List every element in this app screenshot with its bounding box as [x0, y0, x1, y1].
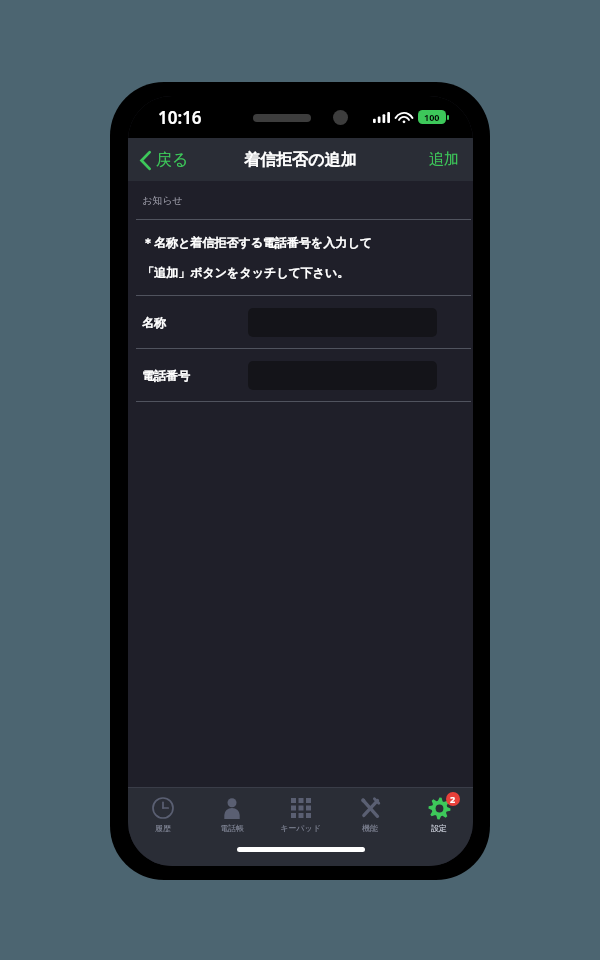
- button[interactable]: 追加: [423, 145, 465, 174]
- staticText: 電話番号: [142, 368, 248, 383]
- button[interactable]: Recents: [128, 788, 197, 840]
- button[interactable]: Keypad: [266, 788, 335, 840]
- staticText: 名称: [142, 315, 248, 330]
- button[interactable]: 名称: [128, 296, 473, 348]
- staticText: 100: [424, 111, 440, 123]
- button[interactable]: 電話番号: [128, 349, 473, 401]
- staticText: 10:16: [158, 106, 202, 129]
- staticText: 機能: [362, 823, 378, 833]
- staticText: 追加: [429, 150, 459, 169]
- staticText: ＊名称と着信拒否する電話番号を入力して: [142, 235, 372, 250]
- button[interactable]: Features: [335, 788, 404, 840]
- button[interactable]: 戻る: [134, 145, 195, 175]
- button[interactable]: Settings: [404, 788, 473, 840]
- staticText: 電話帳: [220, 823, 244, 833]
- staticText: 履歴: [155, 823, 171, 833]
- staticText: 着信拒否の追加: [244, 150, 357, 170]
- staticText: 設定: [431, 823, 447, 833]
- staticText: お知らせ: [142, 194, 183, 207]
- staticText: 戻る: [156, 150, 189, 170]
- staticText: 「追加」ボタンをタッチして下さい。: [142, 265, 350, 280]
- staticText: キーパッド: [280, 823, 321, 833]
- button[interactable]: Contacts: [197, 788, 266, 840]
- staticText: 2: [450, 793, 456, 805]
